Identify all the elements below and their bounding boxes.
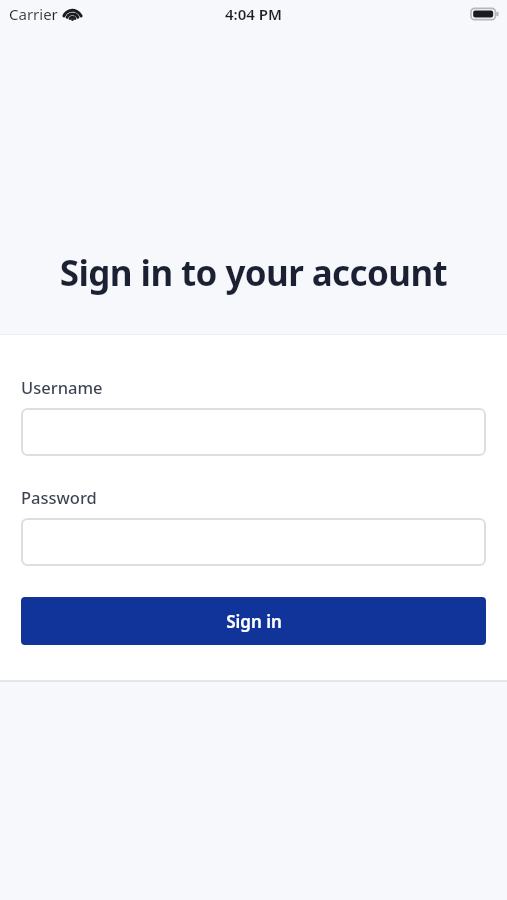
button[interactable] xyxy=(21,408,486,456)
button[interactable] xyxy=(21,518,486,566)
other: Wi-Fi signal xyxy=(63,7,82,21)
staticText: Username xyxy=(21,376,103,398)
staticText: Sign in xyxy=(226,610,282,633)
other: Battery full xyxy=(471,7,499,21)
staticText: 4:04 PM xyxy=(225,4,282,24)
staticText: Carrier xyxy=(9,4,58,24)
staticText: Password xyxy=(21,486,97,508)
button[interactable]: Sign in xyxy=(21,597,486,645)
staticText: Sign in to your account xyxy=(0,249,507,297)
